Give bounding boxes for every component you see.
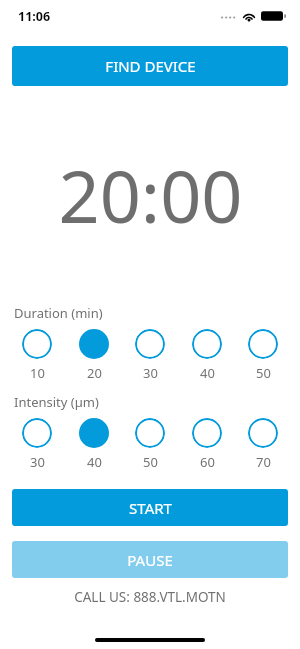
button[interactable]: 30 [127, 329, 173, 382]
button[interactable]: 20 [71, 329, 117, 382]
button[interactable]: START [12, 489, 288, 526]
staticText: Intensity (µm) [14, 393, 99, 411]
staticText: 70 [256, 453, 271, 471]
staticText: 50 [256, 364, 271, 382]
staticText: 30 [30, 453, 45, 471]
staticText: 11:06 [18, 8, 51, 25]
staticText: 20 [87, 364, 102, 382]
staticText: START [129, 498, 172, 518]
staticText: Duration (min) [14, 304, 103, 322]
button[interactable]: 50 [240, 329, 286, 382]
other: Home indicator [0, 631, 300, 649]
staticText: 40 [200, 364, 215, 382]
button[interactable]: FIND DEVICE [12, 46, 288, 86]
button[interactable]: 40 [71, 418, 117, 471]
staticText: FIND DEVICE [105, 56, 196, 76]
button[interactable]: 70 [240, 418, 286, 471]
button[interactable]: PAUSE [12, 541, 288, 578]
button[interactable]: 60 [184, 418, 230, 471]
button[interactable]: 30 [14, 418, 60, 471]
button[interactable]: 50 [127, 418, 173, 471]
button[interactable]: 10 [14, 329, 60, 382]
staticText: 10 [30, 364, 45, 382]
button[interactable]: 40 [184, 329, 230, 382]
staticText: PAUSE [127, 550, 173, 570]
staticText: 60 [200, 453, 215, 471]
staticText: 30 [143, 364, 158, 382]
staticText: 50 [143, 453, 158, 471]
staticText: 40 [87, 453, 102, 471]
staticText: 20:00 [58, 146, 243, 244]
button[interactable]: CALL US: 888.VTL.MOTN [74, 588, 226, 606]
